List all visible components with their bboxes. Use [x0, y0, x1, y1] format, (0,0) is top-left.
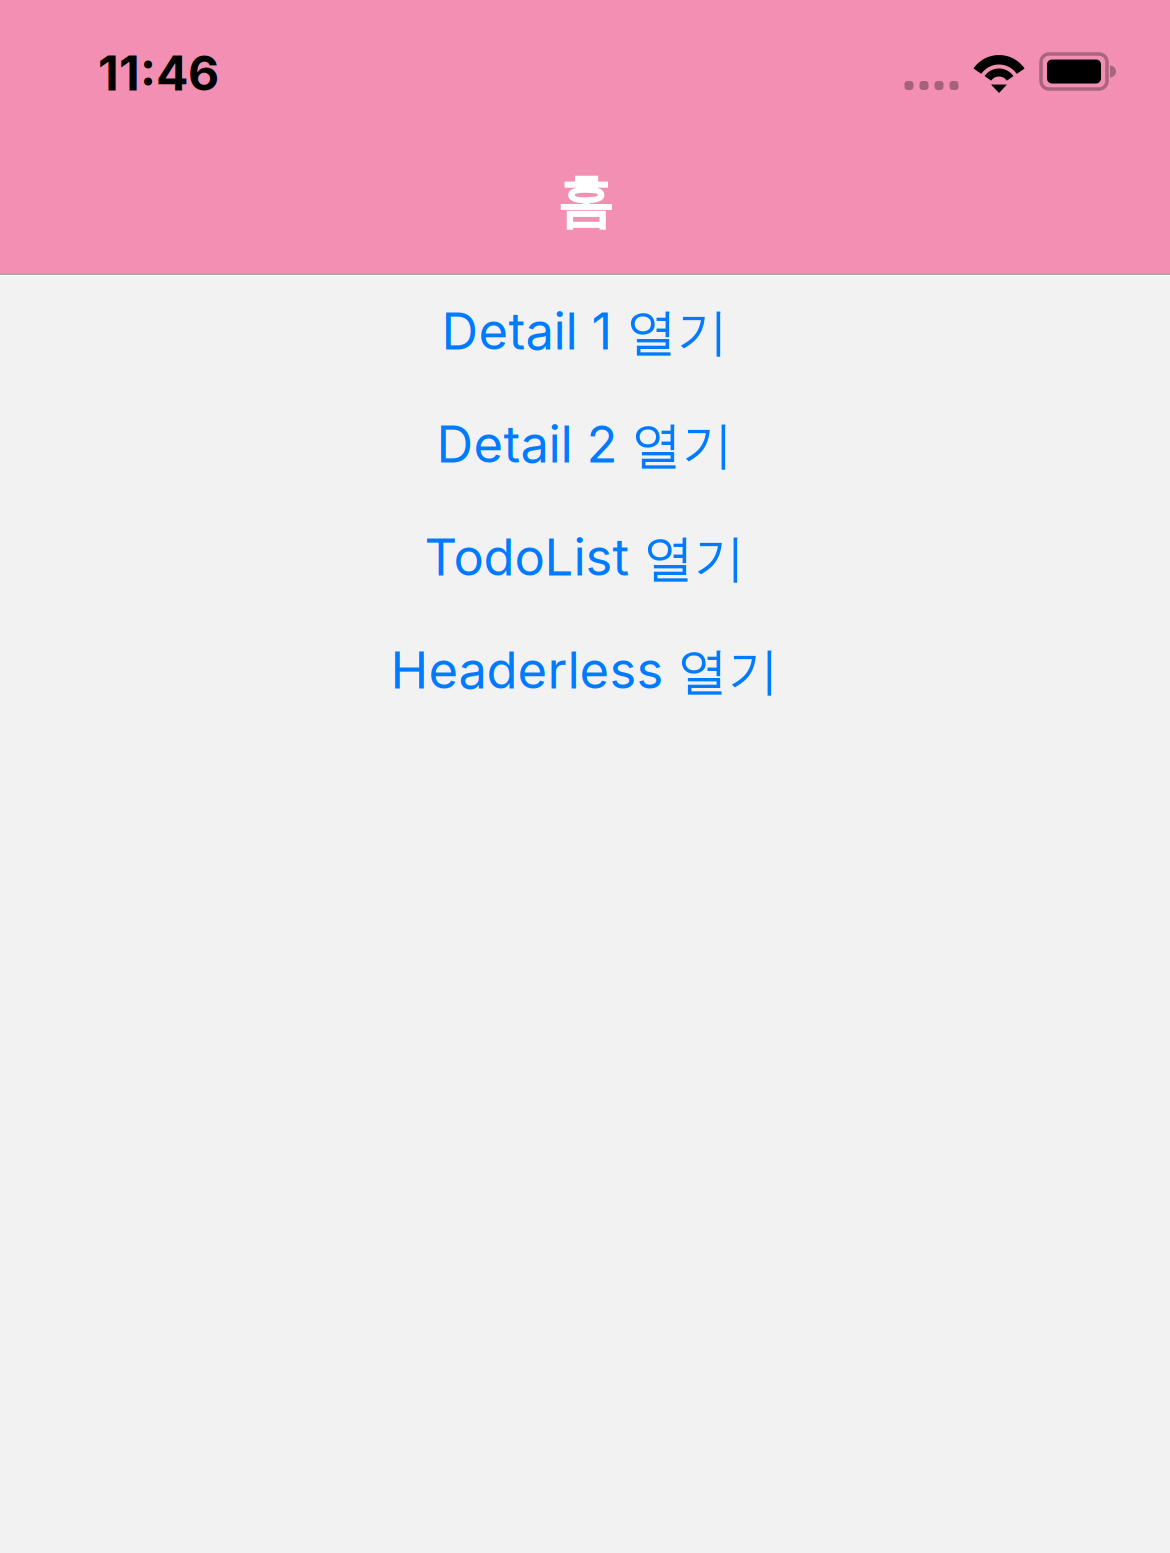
button[interactable]: Detail 1 열기: [0, 276, 1170, 389]
staticText: Detail 2 열기: [436, 413, 733, 477]
button[interactable]: TodoList 열기: [0, 502, 1170, 615]
button[interactable]: Headerless 열기: [0, 615, 1170, 728]
staticText: 11:46: [98, 44, 219, 102]
button[interactable]: Detail 2 열기: [0, 389, 1170, 502]
staticText: Headerless 열기: [390, 639, 779, 703]
staticText: Detail 1 열기: [441, 300, 728, 364]
staticText: 홈: [556, 166, 613, 238]
staticText: TodoList 열기: [424, 526, 745, 590]
